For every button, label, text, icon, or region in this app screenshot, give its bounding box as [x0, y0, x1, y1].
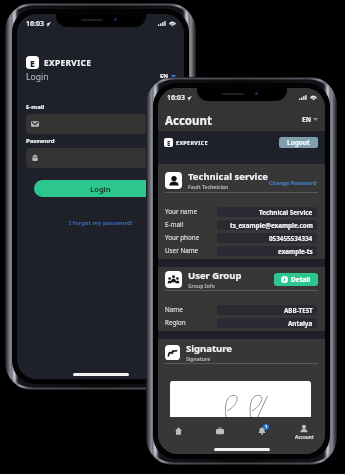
staticText: EXPERVICE: [176, 139, 208, 146]
staticText: Login: [90, 184, 111, 194]
staticText: ABB-TEST: [284, 306, 313, 315]
staticText: EN: [302, 115, 311, 124]
button[interactable]: Detail: [274, 273, 318, 286]
staticText: Your name: [165, 207, 217, 216]
staticText: E: [167, 139, 171, 147]
staticText: Detail: [291, 275, 311, 284]
staticText: Signature: [186, 356, 211, 363]
staticText: E: [30, 57, 35, 69]
staticText: 053455534334: [269, 234, 313, 243]
button[interactable]: I forgot my password!: [67, 217, 135, 229]
staticText: Region: [165, 318, 217, 327]
button[interactable]: Login: [34, 180, 167, 197]
button[interactable]: EN: [300, 114, 320, 125]
button[interactable]: Notifications: [241, 417, 283, 441]
staticText: Fault Technician: [188, 184, 229, 191]
staticText: E-mail: [165, 220, 217, 229]
staticText: Password: [26, 137, 55, 145]
staticText: ts_example@example.com: [230, 221, 313, 230]
staticText: Antalya: [288, 319, 313, 328]
staticText: Account: [165, 113, 212, 129]
button[interactable]: Change Password: [268, 178, 318, 187]
button[interactable]: Logout: [279, 137, 318, 148]
staticText: EXPERVICE: [44, 57, 92, 68]
staticText: 16:03: [26, 19, 44, 29]
staticText: 16:03: [167, 93, 185, 103]
staticText: User Name: [165, 246, 217, 255]
staticText: Technical service: [188, 170, 268, 183]
staticText: Signature: [186, 342, 232, 355]
staticText: EN: [160, 72, 169, 80]
button[interactable]: Account: [283, 417, 325, 441]
staticText: Logout: [287, 138, 310, 147]
staticText: Account: [295, 434, 314, 440]
button[interactable]: Home: [158, 417, 199, 441]
staticText: 1: [265, 424, 268, 430]
button[interactable]: Jobs: [199, 417, 241, 441]
button[interactable]: [26, 148, 175, 168]
staticText: E-mail: [26, 103, 45, 111]
staticText: Group Info: [188, 283, 215, 290]
staticText: Login: [26, 71, 49, 83]
staticText: Name: [165, 305, 217, 314]
staticText: Technical Service: [259, 208, 313, 217]
staticText: example-ts: [278, 247, 313, 256]
button[interactable]: [26, 114, 175, 134]
staticText: User Group: [188, 269, 242, 282]
staticText: Your phone: [165, 233, 217, 242]
button[interactable]: EN: [158, 70, 178, 82]
